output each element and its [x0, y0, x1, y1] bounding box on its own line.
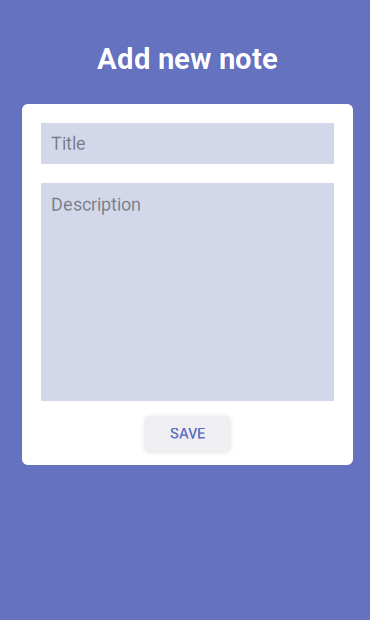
staticText: Description — [51, 194, 141, 215]
button[interactable]: SAVE — [145, 416, 230, 451]
staticText: Title — [51, 133, 86, 154]
staticText: Add new note — [97, 42, 278, 76]
staticText: SAVE — [170, 425, 205, 442]
